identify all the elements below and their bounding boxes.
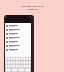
button[interactable]	[5, 40, 31, 44]
button[interactable]	[5, 36, 31, 40]
button[interactable]: Keyboard	[5, 57, 31, 72]
button[interactable]: App bar	[5, 16, 31, 23]
staticText: Chat with your AI HR Coworker	[21, 5, 44, 11]
button[interactable]	[5, 32, 31, 36]
button[interactable]	[5, 44, 31, 48]
button[interactable]	[5, 24, 31, 28]
button[interactable]	[5, 28, 31, 32]
button[interactable]	[5, 48, 31, 52]
